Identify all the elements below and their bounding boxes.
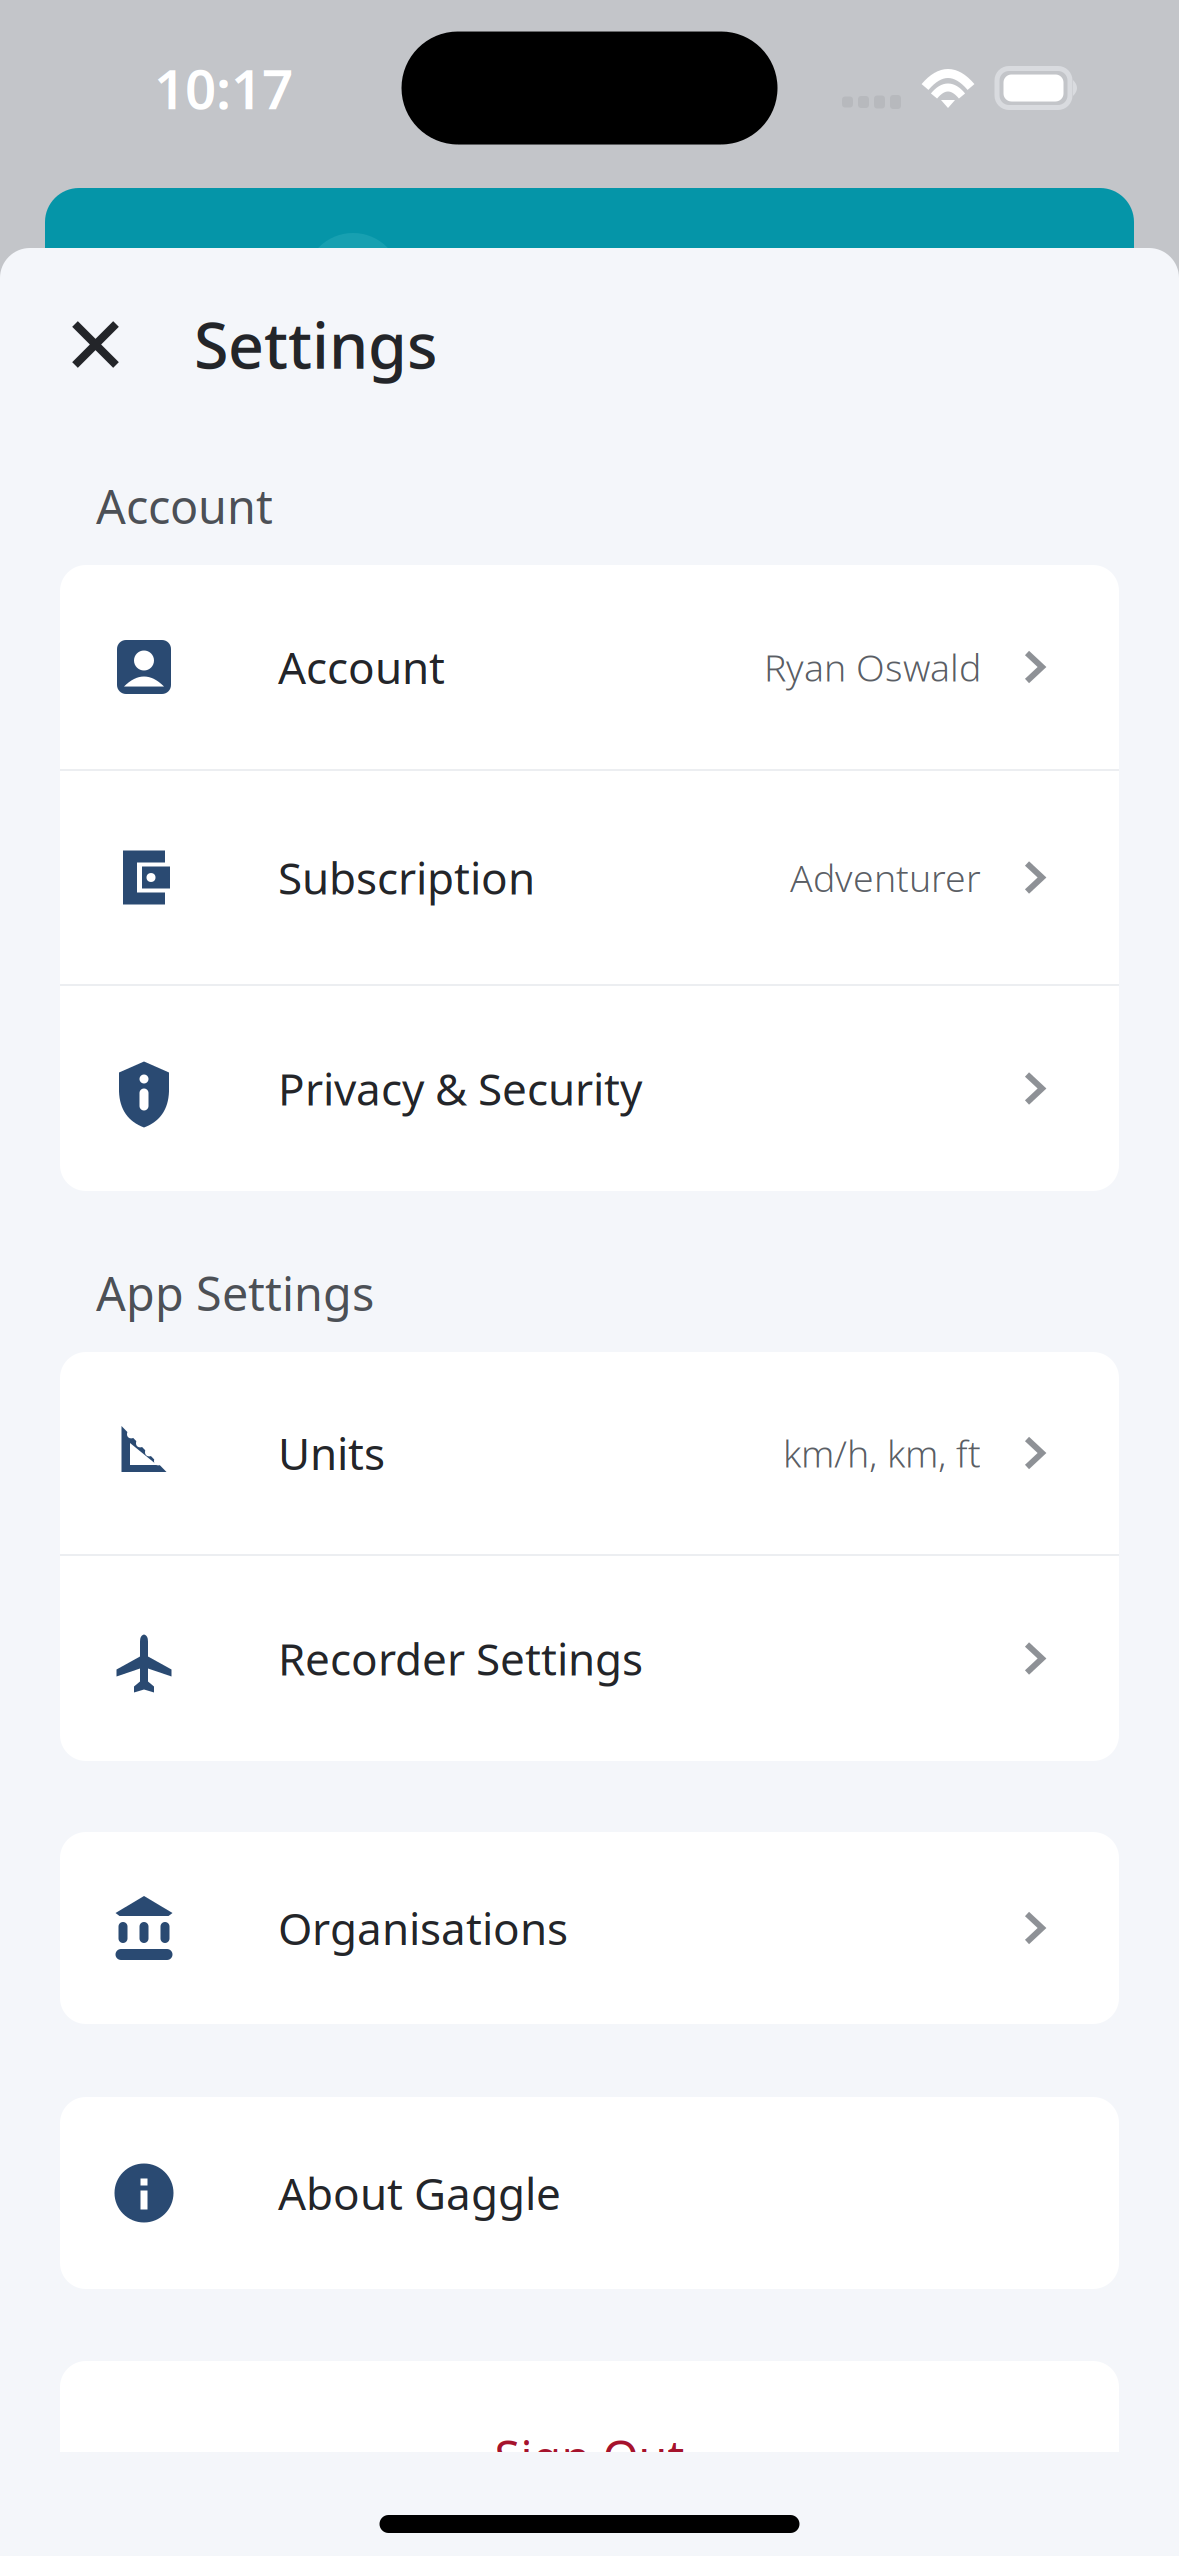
button[interactable]: Close xyxy=(45,296,146,393)
button[interactable]: Privacy & Security xyxy=(60,986,1119,1191)
staticText: km/h, km, ft xyxy=(783,1428,981,1478)
staticText: About Gaggle xyxy=(278,2164,561,2222)
staticText: Account xyxy=(278,638,445,696)
staticText: App Settings xyxy=(96,1262,374,1324)
staticText: Organisations xyxy=(278,1899,568,1957)
staticText: Account xyxy=(96,475,273,537)
staticText: Settings xyxy=(194,303,437,386)
button[interactable]: About Gaggle xyxy=(60,2097,1119,2289)
staticText: Subscription xyxy=(278,848,535,907)
staticText: Units xyxy=(278,1424,385,1482)
button[interactable]: Sign Out xyxy=(60,2361,1119,2553)
staticText: Ryan Oswald xyxy=(764,642,981,692)
staticText: Privacy & Security xyxy=(278,1059,642,1118)
staticText: Sign Out xyxy=(494,2426,684,2488)
button[interactable]: Recorder Settings xyxy=(60,1556,1119,1761)
staticText: 10:17 xyxy=(154,52,293,124)
button[interactable]: Units xyxy=(60,1352,1119,1554)
button[interactable]: Organisations xyxy=(60,1832,1119,2024)
staticText: Recorder Settings xyxy=(278,1629,643,1688)
button[interactable]: Subscription xyxy=(60,771,1119,984)
staticText: Adventurer xyxy=(790,853,981,902)
button[interactable]: Account xyxy=(60,565,1119,769)
